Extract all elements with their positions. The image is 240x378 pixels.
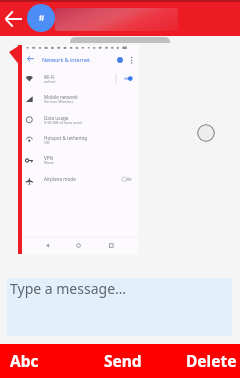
staticText: sofnet	[44, 79, 56, 84]
staticText: Verizon Wireless	[44, 99, 74, 104]
staticText: Abc	[10, 350, 39, 371]
staticText: None	[44, 160, 54, 165]
button[interactable]: Send	[103, 347, 143, 374]
button[interactable]: Loading	[197, 124, 215, 142]
staticText: Mobile network	[44, 94, 78, 100]
staticText: Off	[44, 140, 50, 145]
staticText: Type a message…	[10, 279, 127, 298]
staticText: Wi-Fi	[44, 74, 55, 80]
staticText: Data usage	[44, 115, 69, 121]
staticText: Delete	[186, 350, 237, 371]
staticText: Send	[104, 350, 142, 371]
button[interactable]: Abc	[9, 347, 40, 374]
staticText: Network & internet	[42, 56, 90, 63]
button[interactable]: Delete	[185, 347, 238, 374]
button[interactable]	[27, 4, 55, 32]
button[interactable]: Type a message…	[7, 278, 232, 336]
button[interactable]: Back	[0, 3, 26, 35]
staticText: VPN	[44, 155, 54, 161]
staticText: Airplane mode	[44, 176, 76, 182]
staticText: 9.98 MB of data used	[44, 120, 82, 125]
staticText: Hotspot & tethering	[44, 135, 88, 141]
